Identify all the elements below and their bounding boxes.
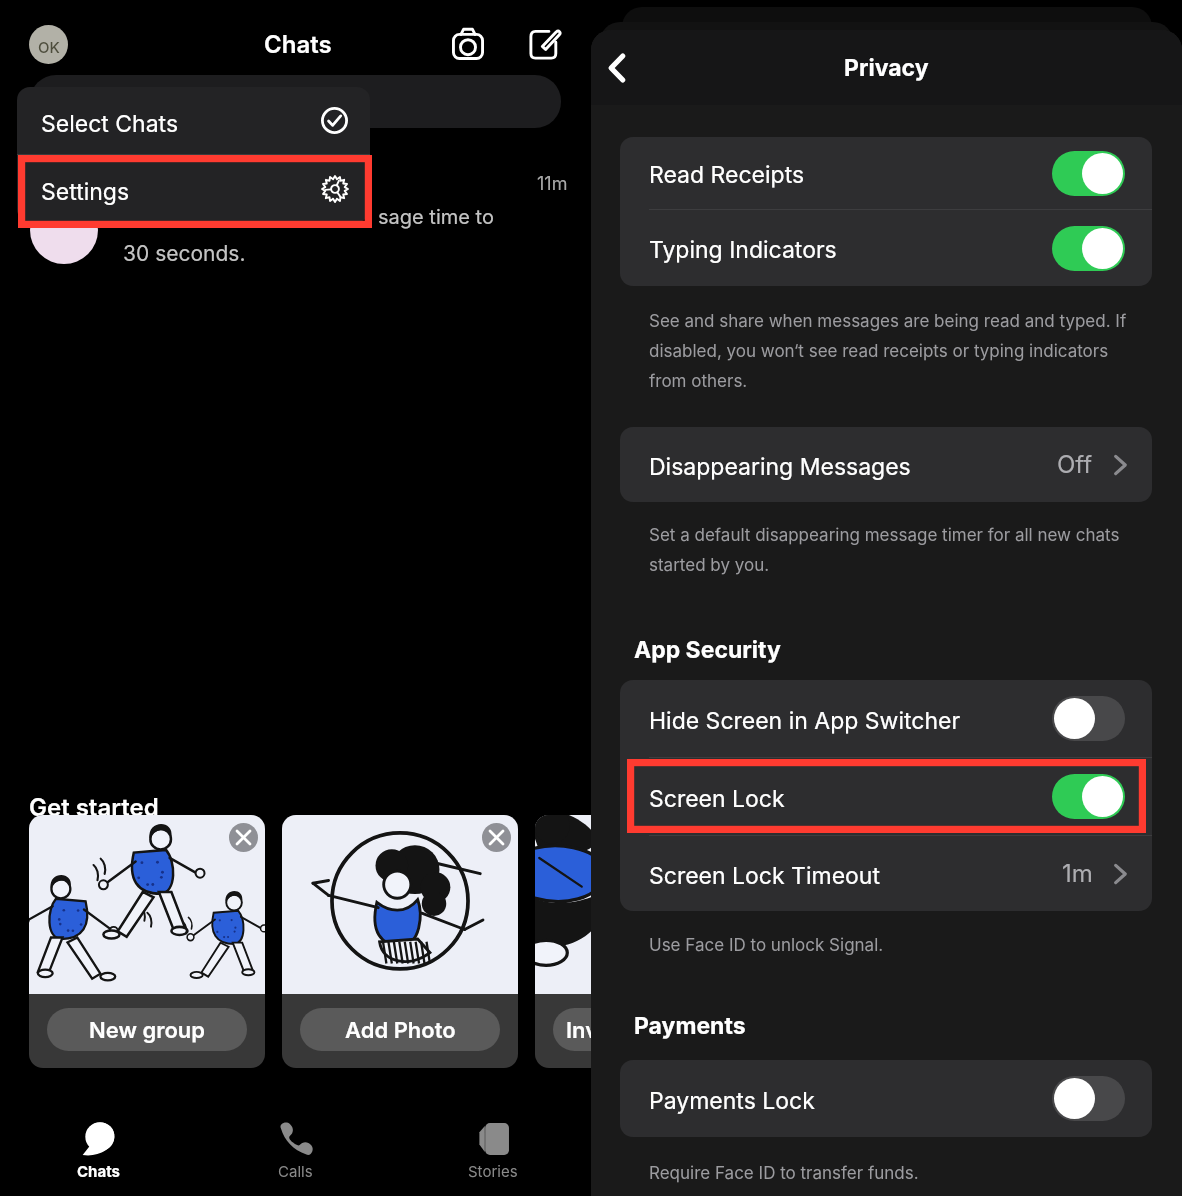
button[interactable]: Profile	[29, 25, 68, 64]
button[interactable]: Dismiss	[282, 815, 518, 1068]
button[interactable]: Calls	[197, 1080, 394, 1196]
staticText: sage time to	[378, 205, 494, 229]
button[interactable]: Back	[591, 37, 649, 99]
button[interactable]: Chats	[0, 1080, 197, 1196]
staticText: Use Face ID to unlock Signal.	[649, 935, 1149, 956]
staticText: 1m	[1062, 859, 1093, 888]
staticText: Chats	[77, 1162, 120, 1180]
button[interactable]: Hide Screen in App Switcher	[620, 680, 1152, 757]
staticText: Settings	[41, 178, 130, 206]
staticText: Screen Lock Timeout	[649, 862, 880, 890]
staticText: Select Chats	[41, 110, 179, 138]
button[interactable]: Camera	[442, 18, 494, 70]
staticText: Get started	[29, 793, 159, 822]
staticText: Typing Indicators	[649, 236, 837, 264]
button[interactable]: Stories	[394, 1080, 591, 1196]
button[interactable]: New chat	[519, 18, 571, 70]
button[interactable]: Enabled	[1052, 151, 1125, 196]
button[interactable]: Disabled	[1052, 696, 1125, 741]
staticText: OK	[38, 38, 60, 56]
staticText: New group	[89, 1017, 205, 1044]
button[interactable]: Settings	[17, 155, 370, 222]
button[interactable]: New group	[47, 1008, 247, 1051]
staticText: Off	[1057, 450, 1093, 479]
staticText: See and share when messages are being re…	[649, 311, 1149, 391]
staticText: Chats	[264, 30, 332, 59]
staticText: Invite	[566, 1017, 620, 1044]
button[interactable]: Screen Lock	[620, 758, 1152, 835]
staticText: Calls	[278, 1162, 313, 1180]
staticText: Add Photo	[345, 1017, 456, 1044]
staticText: 30 seconds.	[123, 241, 246, 266]
button[interactable]: Dismiss	[535, 815, 620, 1068]
staticText: Privacy	[844, 54, 929, 82]
staticText: App Security	[634, 636, 781, 664]
button[interactable]: Enabled	[1052, 774, 1125, 819]
button[interactable]: Dismiss	[229, 823, 258, 852]
button[interactable]: Enabled	[1052, 226, 1125, 271]
button[interactable]: Add Photo	[300, 1008, 500, 1051]
button[interactable]: Payments Lock	[620, 1060, 1152, 1137]
staticText: Disappearing Messages	[649, 453, 911, 481]
staticText: 11m	[537, 173, 568, 195]
button[interactable]: Dismiss	[29, 815, 265, 1068]
button[interactable]: Select Chats	[17, 87, 370, 154]
staticText: Set a default disappearing message timer…	[649, 525, 1149, 575]
button[interactable]: Search	[30, 75, 561, 128]
button[interactable]: Dismiss	[482, 823, 511, 852]
button[interactable]: Invite	[553, 1008, 620, 1051]
button[interactable]: Screen Lock Timeout	[620, 836, 1152, 911]
staticText: Payments Lock	[649, 1087, 815, 1115]
staticText: Require Face ID to transfer funds.	[649, 1163, 1149, 1184]
staticText: Screen Lock	[649, 785, 785, 813]
button[interactable]: Disabled	[1052, 1076, 1125, 1121]
staticText: Hide Screen in App Switcher	[649, 707, 961, 735]
staticText: Stories	[468, 1162, 518, 1180]
button[interactable]: Disappearing Messages	[620, 427, 1152, 502]
staticText: Read Receipts	[649, 161, 805, 189]
button[interactable]: Typing Indicators	[620, 210, 1152, 286]
button[interactable]: Read Receipts	[620, 137, 1152, 209]
staticText: Payments	[634, 1012, 746, 1040]
